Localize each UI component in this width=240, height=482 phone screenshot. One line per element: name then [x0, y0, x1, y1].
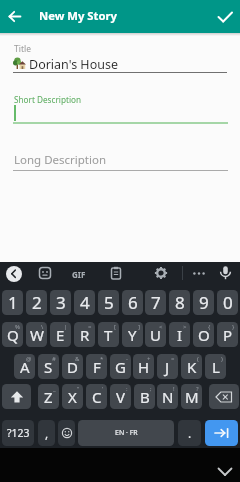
button[interactable]: T — [98, 322, 119, 347]
button[interactable]: 8 — [169, 290, 190, 315]
button[interactable] — [205, 420, 238, 446]
button[interactable]: X — [62, 384, 83, 409]
staticText: ' — [102, 385, 104, 393]
staticText: C — [92, 387, 102, 407]
staticText: G — [115, 357, 126, 377]
staticText: N — [162, 387, 174, 407]
staticText: A — [20, 357, 30, 377]
button[interactable] — [214, 5, 238, 29]
button[interactable]: 5 — [98, 290, 119, 315]
button[interactable] — [2, 384, 31, 409]
button[interactable]: F — [86, 354, 107, 379]
button[interactable] — [209, 384, 239, 409]
button[interactable]: H — [133, 354, 154, 379]
staticText: New My Story — [39, 8, 118, 23]
staticText: 0 — [223, 291, 233, 314]
staticText: P — [223, 325, 233, 345]
staticText: _ — [53, 385, 56, 393]
staticText: } — [232, 323, 235, 331]
button[interactable]: 3 — [50, 290, 71, 315]
button[interactable]: L — [205, 354, 226, 379]
button[interactable] — [38, 266, 52, 280]
staticText: Long Description — [14, 152, 107, 168]
staticText: U — [150, 325, 161, 345]
button[interactable]: C — [86, 384, 107, 409]
staticText: D — [67, 357, 78, 377]
staticText: , — [45, 425, 49, 441]
button[interactable]: 7 — [145, 290, 166, 315]
button[interactable]: . — [178, 420, 201, 446]
button[interactable] — [154, 266, 168, 280]
staticText: 4 — [80, 291, 90, 314]
staticText: K — [187, 357, 197, 377]
button[interactable]: E — [50, 322, 71, 347]
staticText: 5 — [104, 291, 114, 314]
staticText: ; — [150, 385, 152, 393]
button[interactable]: I — [169, 322, 190, 347]
staticText: @ — [26, 355, 32, 363]
button[interactable]: J — [157, 354, 178, 379]
staticText: % — [15, 323, 20, 331]
button[interactable]: B — [134, 384, 155, 409]
button[interactable]: 0 — [217, 290, 238, 315]
staticText: Dorian's House — [29, 56, 118, 73]
staticText: - — [126, 355, 128, 363]
staticText: GIF — [72, 269, 86, 280]
staticText: " — [77, 385, 80, 393]
button[interactable]: A — [14, 354, 35, 379]
staticText: 9 — [199, 291, 209, 314]
staticText: \ — [41, 323, 44, 331]
staticText: < — [159, 323, 163, 331]
staticText: = — [171, 355, 175, 363]
button[interactable]: ?123 — [2, 420, 34, 446]
staticText: E — [56, 325, 65, 345]
staticText: O — [198, 325, 210, 345]
staticText: T — [104, 325, 113, 345]
staticText: F — [93, 357, 101, 377]
staticText: 1 — [8, 291, 18, 314]
staticText: R — [80, 325, 90, 345]
staticText: J — [165, 357, 170, 377]
button[interactable]: S — [38, 354, 59, 379]
button[interactable]: 4 — [74, 290, 95, 315]
button[interactable]: W — [26, 322, 47, 347]
button[interactable] — [109, 266, 123, 280]
button[interactable] — [58, 420, 75, 446]
button[interactable]: Y — [122, 322, 143, 347]
staticText: X — [68, 387, 77, 407]
staticText: B — [140, 387, 150, 407]
button[interactable]: K — [181, 354, 202, 379]
button[interactable] — [215, 462, 235, 480]
staticText: ? — [196, 385, 199, 393]
staticText: [ — [114, 323, 116, 331]
button[interactable]: G — [110, 354, 131, 379]
staticText: ] — [138, 323, 140, 331]
staticText: ( — [197, 355, 199, 363]
button[interactable]: Q — [2, 322, 23, 347]
button[interactable]: 1 — [2, 290, 23, 315]
button[interactable]: 6 — [122, 290, 143, 315]
button[interactable]: 9 — [193, 290, 214, 315]
button[interactable]: P — [217, 322, 238, 347]
button[interactable]: M — [181, 384, 202, 409]
staticText: + — [147, 355, 151, 363]
button[interactable]: , — [38, 420, 55, 446]
staticText: : — [126, 385, 128, 393]
button[interactable]: U — [145, 322, 166, 347]
button[interactable]: D — [62, 354, 83, 379]
staticText: Title — [14, 43, 31, 55]
button[interactable]: O — [193, 322, 214, 347]
button[interactable] — [4, 6, 26, 28]
button[interactable]: Z — [38, 384, 59, 409]
staticText: * — [100, 355, 104, 363]
button[interactable]: EN · FR — [78, 420, 174, 446]
button[interactable] — [218, 265, 233, 281]
button[interactable]: V — [110, 384, 131, 409]
button[interactable] — [6, 266, 22, 282]
staticText: Z — [44, 387, 53, 407]
staticText: & — [75, 355, 80, 363]
staticText: # — [52, 355, 56, 363]
button[interactable]: N — [157, 384, 178, 409]
button[interactable]: R — [74, 322, 95, 347]
button[interactable]: 2 — [26, 290, 47, 315]
